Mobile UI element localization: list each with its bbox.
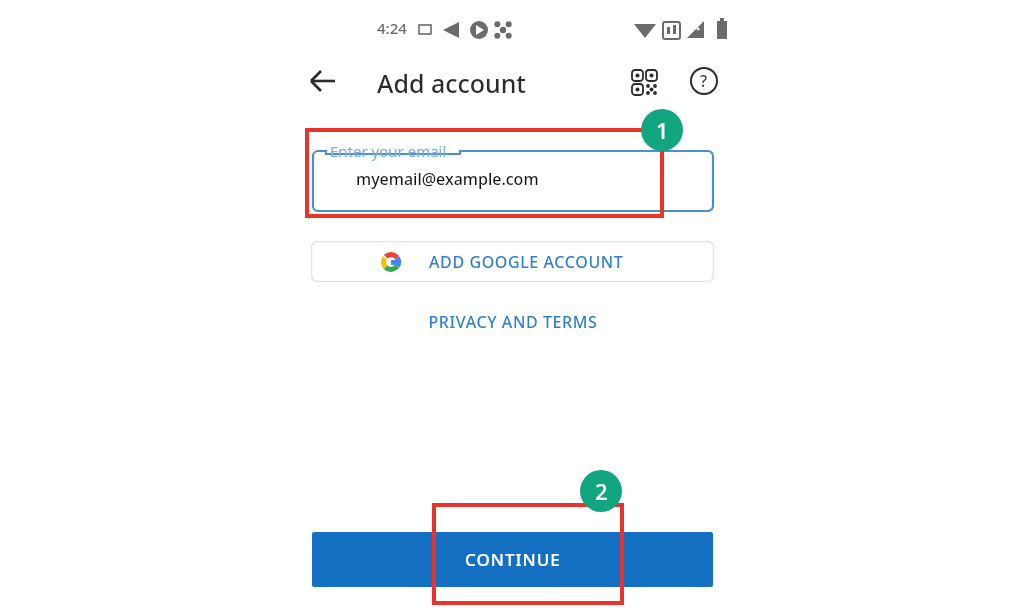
staticText: 4:24 <box>377 18 407 38</box>
staticText: 1 <box>656 115 669 145</box>
staticText: PRIVACY AND TERMS <box>428 311 598 333</box>
staticText: ADD GOOGLE ACCOUNT <box>429 251 624 273</box>
staticText: 2 <box>595 476 608 506</box>
staticText: Enter your email <box>330 141 447 161</box>
button[interactable]: Enter your email <box>312 150 714 212</box>
button[interactable]: CONTINUE <box>312 532 713 587</box>
staticText: Add account <box>377 66 526 100</box>
staticText: myemail@example.com <box>356 168 539 190</box>
button[interactable]: Scan QR code <box>626 63 662 99</box>
button[interactable]: Help <box>686 63 722 99</box>
button[interactable]: PRIVACY AND TERMS <box>390 308 635 336</box>
button[interactable]: Back <box>303 61 343 101</box>
button[interactable]: ADD GOOGLE ACCOUNT <box>311 241 714 282</box>
staticText: CONTINUE <box>465 548 561 571</box>
staticText: ? <box>700 70 708 92</box>
